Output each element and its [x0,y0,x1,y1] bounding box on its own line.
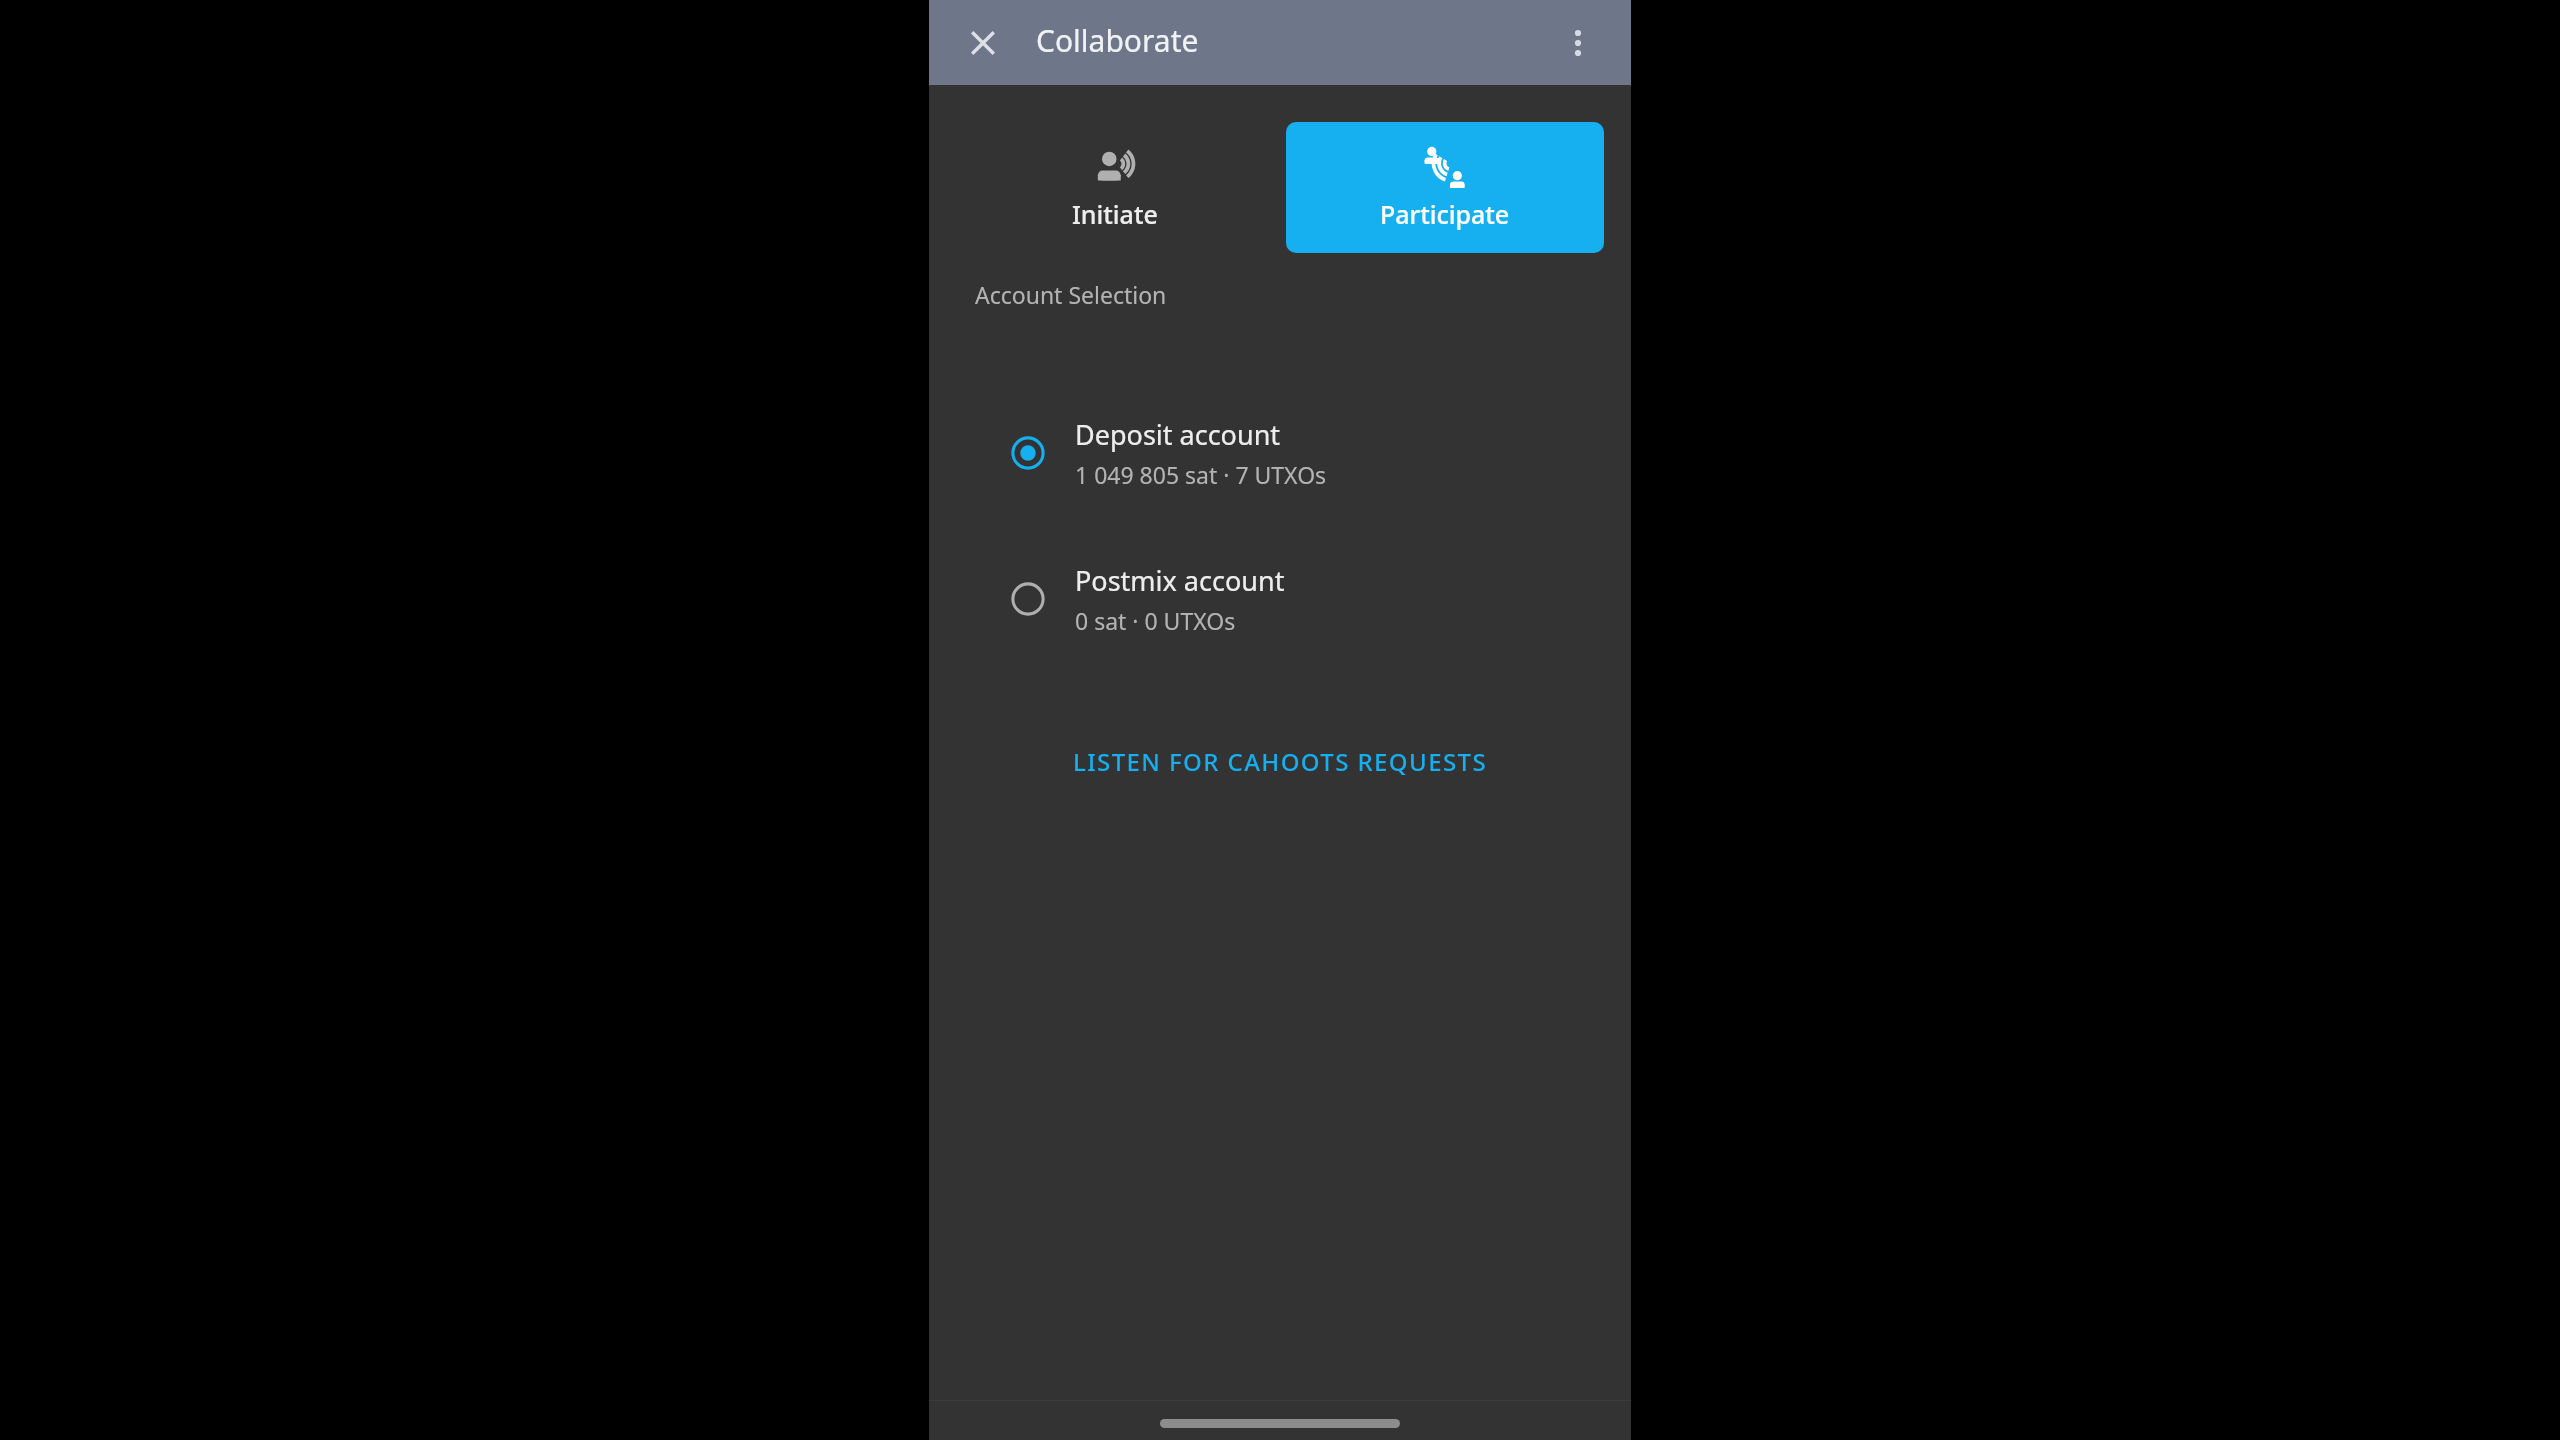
staticText: Deposit account [1075,416,1281,453]
button[interactable]: Close [959,19,1007,67]
button[interactable]: Initiate [956,122,1274,253]
staticText: Postmix account [1075,562,1285,599]
button[interactable]: Participate [1286,122,1604,253]
staticText: Account Selection [975,279,1167,310]
button[interactable]: Deposit account [929,394,1631,511]
staticText: LISTEN FOR CAHOOTS REQUESTS [1073,745,1487,778]
button[interactable]: LISTEN FOR CAHOOTS REQUESTS [1057,733,1503,790]
button[interactable]: Postmix account [929,540,1631,657]
staticText: 1 049 805 sat · 7 UTXOs [1075,459,1327,490]
staticText: Participate [1380,197,1510,231]
button[interactable]: More options [1554,19,1602,67]
staticText: 0 sat · 0 UTXOs [1075,605,1236,636]
staticText: Collaborate [1036,20,1199,61]
staticText: Initiate [1072,197,1158,231]
